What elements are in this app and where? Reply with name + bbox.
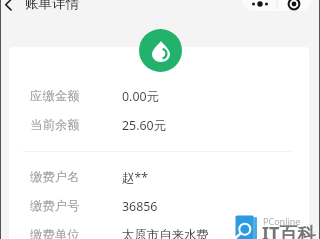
- staticText: 36856: [122, 198, 158, 214]
- button[interactable]: More options: [242, 0, 277, 11]
- button[interactable]: 缴费户名: [20, 169, 292, 185]
- staticText: 0.00元: [122, 88, 159, 104]
- staticText: 缴费户名: [30, 169, 80, 185]
- staticText: 当前余额: [30, 117, 80, 133]
- staticText: 应缴金额: [30, 88, 80, 104]
- button[interactable]: 缴费单位: [20, 227, 292, 239]
- staticText: 赵**: [122, 169, 149, 185]
- button[interactable]: Water utility: [139, 29, 182, 72]
- staticText: 账单详情: [25, 0, 79, 12]
- staticText: PConline: [263, 215, 301, 227]
- button[interactable]: Close: [278, 0, 311, 11]
- staticText: 太原市自来水费: [122, 227, 209, 239]
- button[interactable]: 缴费户号: [20, 198, 292, 214]
- staticText: 缴费单位: [30, 227, 80, 239]
- staticText: IT百科: [262, 221, 316, 239]
- staticText: 缴费户号: [30, 198, 80, 214]
- staticText: 25.60元: [122, 117, 167, 133]
- button[interactable]: Back: [0, 0, 20, 20]
- button[interactable]: 当前余额: [20, 117, 292, 133]
- button[interactable]: 应缴金额: [20, 88, 292, 104]
